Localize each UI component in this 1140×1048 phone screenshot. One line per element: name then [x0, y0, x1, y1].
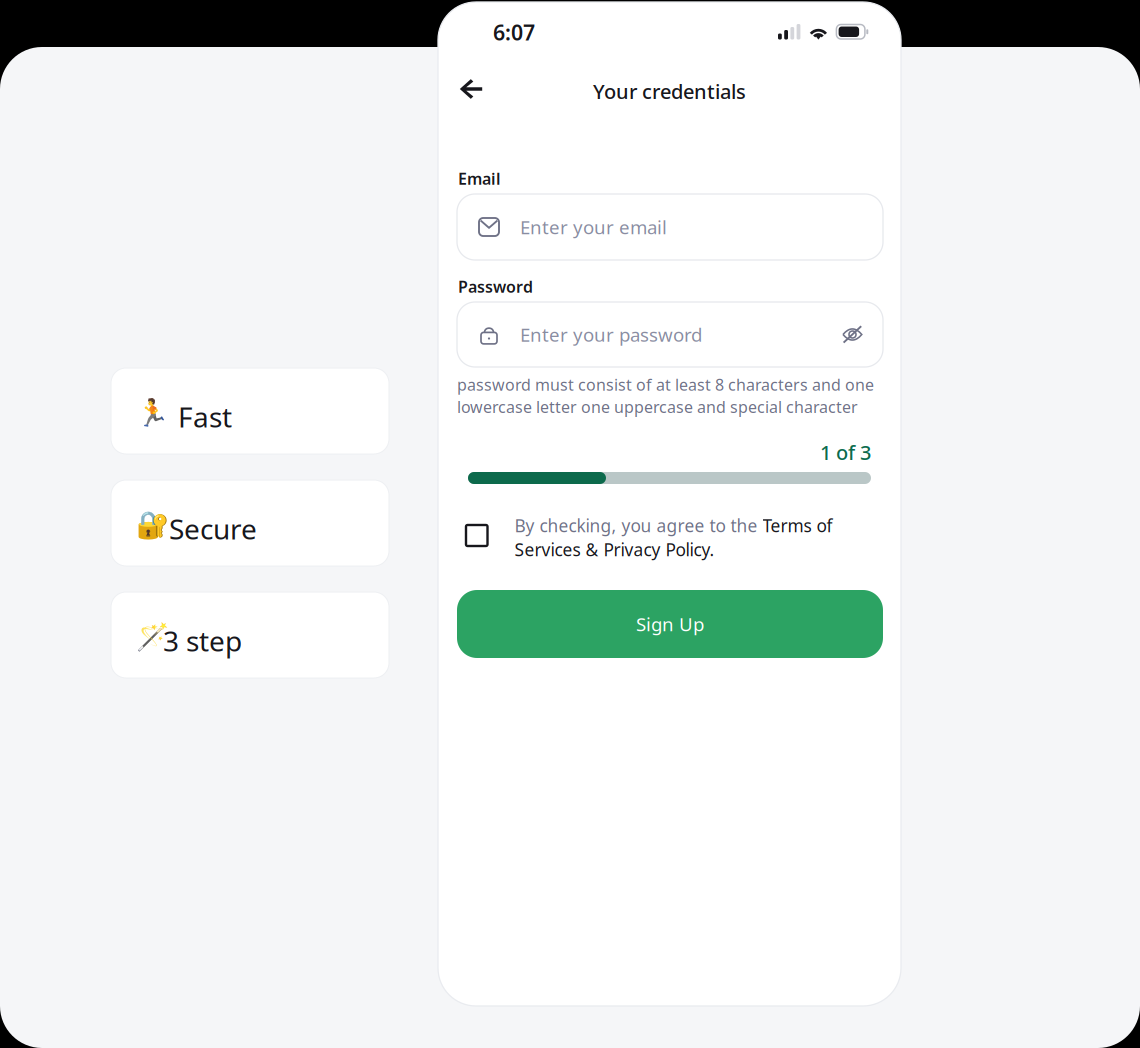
button[interactable]: Enter your password	[457, 302, 883, 367]
staticText: Secure	[169, 510, 257, 547]
staticText: 🪄	[136, 622, 169, 652]
staticText: 6:07	[493, 18, 535, 46]
staticText: 3 step	[163, 622, 242, 659]
button[interactable]: 🏃	[111, 368, 389, 454]
button[interactable]: Sign Up	[457, 590, 883, 658]
staticText: Your credentials	[593, 78, 746, 105]
staticText: 1 of 3	[820, 439, 871, 466]
staticText: 🔐	[136, 510, 169, 540]
staticText: 🏃	[136, 398, 169, 428]
staticText: Services & Privacy Policy.	[514, 538, 714, 561]
staticText: password must consist of at least 8 char…	[457, 374, 874, 417]
button[interactable]: Enter your email	[457, 194, 883, 260]
button[interactable]: 🔐	[111, 480, 389, 566]
button[interactable]: By checking, you agree to the	[466, 514, 892, 561]
staticText: Enter your password	[520, 322, 702, 347]
staticText: Email	[458, 168, 501, 189]
button[interactable]: 🪄	[111, 592, 389, 678]
staticText: Password	[458, 276, 533, 297]
button[interactable]: Back	[449, 72, 493, 106]
staticText: Fast	[178, 398, 232, 435]
staticText: Enter your email	[520, 215, 667, 239]
staticText: Sign Up	[636, 612, 704, 636]
staticText: By checking, you agree to the	[514, 514, 762, 537]
staticText: Terms of	[762, 514, 832, 537]
